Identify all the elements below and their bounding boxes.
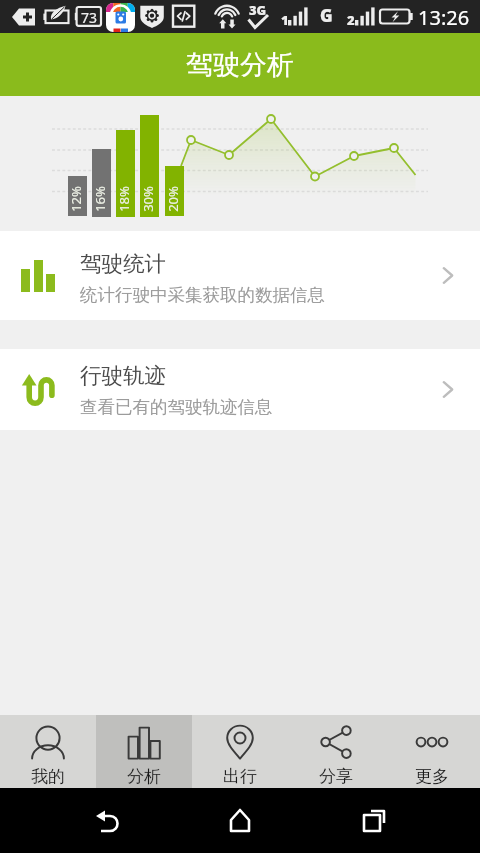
- button[interactable]: 分享: [288, 715, 384, 788]
- button[interactable]: 分析: [96, 715, 192, 788]
- button[interactable]: 更多: [384, 715, 480, 788]
- staticText: 查看已有的驾驶轨迹信息: [80, 396, 273, 418]
- button[interactable]: 行驶轨迹: [0, 349, 480, 430]
- staticText: 12%: [67, 186, 85, 212]
- staticText: 20%: [164, 186, 182, 212]
- staticText: 2: [347, 11, 355, 29]
- staticText: 分析: [127, 766, 161, 787]
- staticText: 驾驶统计: [80, 250, 166, 277]
- button[interactable]: 我的: [0, 715, 96, 788]
- staticText: 驾驶分析: [186, 48, 294, 82]
- staticText: 16%: [91, 186, 109, 212]
- staticText: 30%: [139, 186, 157, 212]
- button[interactable]: 驾驶统计: [0, 231, 480, 320]
- staticText: 18%: [115, 186, 133, 212]
- staticText: 出行: [223, 766, 257, 787]
- staticText: 1: [281, 11, 289, 29]
- staticText: 行驶轨迹: [80, 362, 166, 389]
- staticText: 分享: [319, 766, 353, 787]
- staticText: 我的: [31, 766, 65, 787]
- button[interactable]: 出行: [192, 715, 288, 788]
- staticText: 统计行驶中采集获取的数据信息: [80, 284, 325, 306]
- staticText: G: [320, 4, 333, 27]
- staticText: 更多: [415, 766, 449, 787]
- staticText: 13:26: [418, 4, 470, 31]
- staticText: 73: [81, 8, 98, 27]
- staticText: 3G: [249, 1, 267, 19]
